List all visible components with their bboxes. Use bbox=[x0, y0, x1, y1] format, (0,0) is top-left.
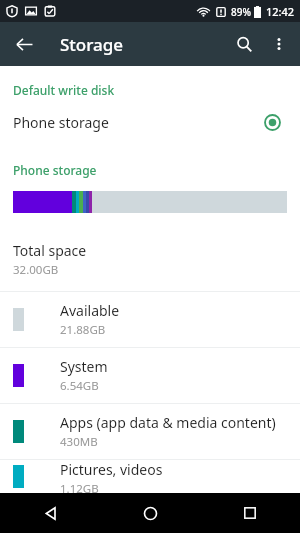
button[interactable]: Back bbox=[0, 493, 100, 533]
button[interactable]: Home bbox=[100, 493, 200, 533]
button[interactable]: Total space bbox=[0, 241, 300, 278]
button[interactable]: More options bbox=[262, 27, 296, 61]
staticText: Phone storage bbox=[13, 162, 97, 178]
button[interactable]: Apps (app data & media content) bbox=[0, 404, 300, 459]
staticText: 21.88GB bbox=[60, 322, 106, 338]
button[interactable]: System bbox=[0, 348, 300, 403]
staticText: Storage bbox=[60, 33, 124, 56]
staticText: Phone storage bbox=[13, 113, 260, 132]
staticText: 430MB bbox=[60, 434, 98, 450]
staticText: Pictures, videos bbox=[60, 460, 163, 479]
staticText: Available bbox=[60, 301, 120, 320]
staticText: System bbox=[60, 357, 108, 376]
button[interactable]: Back bbox=[6, 26, 42, 62]
button[interactable]: Pictures, videos bbox=[0, 460, 300, 493]
staticText: 1.12GB bbox=[60, 481, 99, 493]
staticText: Apps (app data & media content) bbox=[60, 413, 276, 432]
button[interactable]: Search bbox=[226, 26, 262, 62]
staticText: 32.00GB bbox=[13, 262, 59, 278]
staticText: Total space bbox=[13, 241, 87, 260]
staticText: Default write disk bbox=[13, 82, 115, 98]
button[interactable]: Available bbox=[0, 292, 300, 347]
staticText: 6.54GB bbox=[60, 378, 99, 394]
staticText: 12:42 bbox=[266, 4, 295, 19]
button[interactable]: Phone storage bbox=[0, 106, 300, 138]
button[interactable]: Phone storage selected bbox=[260, 110, 284, 134]
staticText: 89% bbox=[231, 5, 251, 19]
button[interactable]: Recents bbox=[200, 493, 300, 533]
